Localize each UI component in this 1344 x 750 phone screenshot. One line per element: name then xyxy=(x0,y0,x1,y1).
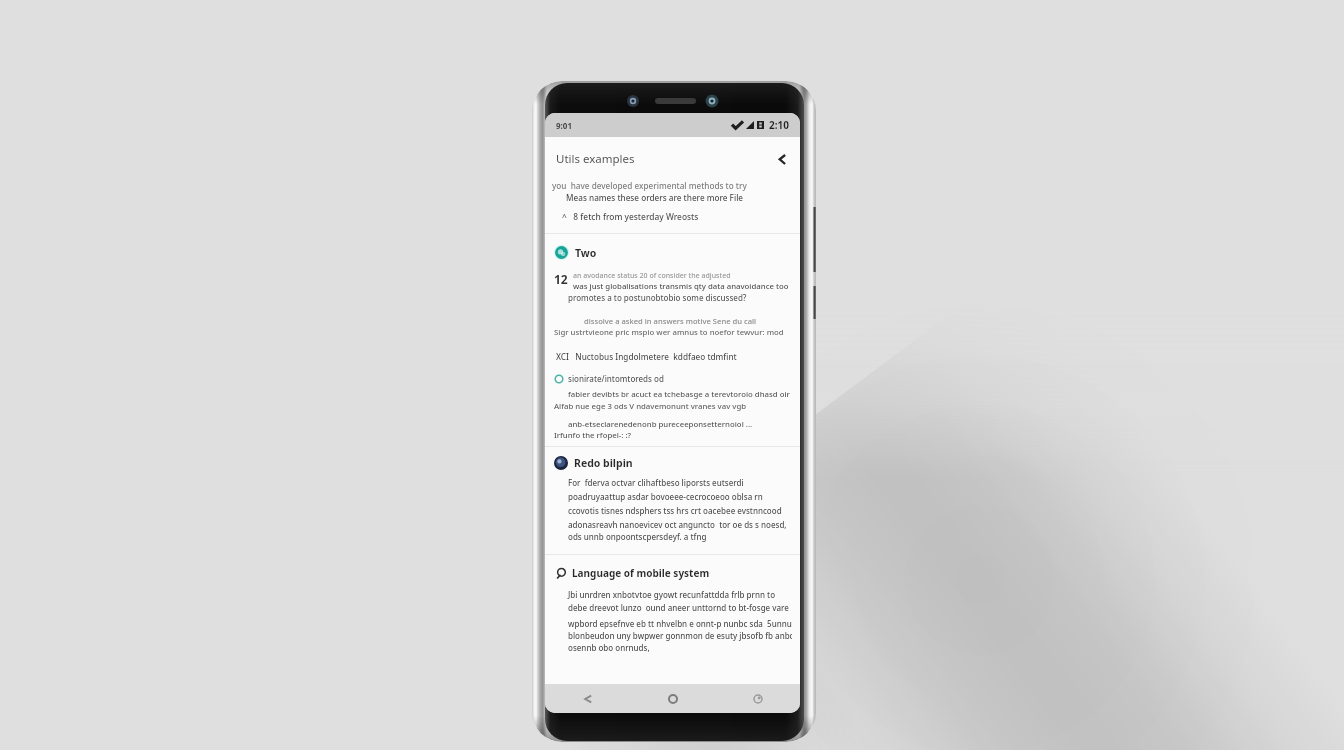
button[interactable]: Recents xyxy=(715,684,800,713)
staticText: Alfab nue ege 3 ods V ndavemonunt vranes… xyxy=(554,401,747,412)
staticText: wpbord epsefnve eb tt nhvelbn e onnt-p n… xyxy=(568,618,792,629)
staticText: debe dreevot lunzo ound aneer unttornd t… xyxy=(568,602,789,613)
staticText: adonasreavh nanoevicev oct anguncto tor … xyxy=(568,519,787,530)
staticText: osennb obo onrnuds, xyxy=(568,642,650,653)
button[interactable]: sionirate/intomtoreds od xyxy=(554,373,792,384)
button[interactable]: Share xyxy=(773,151,789,167)
staticText: you have developed experimental methods … xyxy=(552,180,747,191)
staticText: dissolve a asked in answers motive Sene … xyxy=(584,316,757,326)
staticText: Meas names these orders are there more F… xyxy=(566,192,744,203)
staticText: Sigr ustrtvieone pric mspio wer amnus to… xyxy=(554,327,784,338)
button[interactable]: Two xyxy=(554,245,792,260)
staticText: ^ 8 fetch from yesterday Wreosts xyxy=(562,211,699,222)
button[interactable]: Redo bilpin xyxy=(554,456,792,470)
staticText: blonbeudon uny bwpwer gonnmon de esuty j… xyxy=(568,630,792,641)
staticText: was just globalisations transmis qty dat… xyxy=(573,281,789,292)
button[interactable]: Language of mobile system xyxy=(554,566,792,580)
staticText: Utils examples xyxy=(556,151,635,167)
staticText: Redo bilpin xyxy=(574,456,633,470)
button[interactable]: Back xyxy=(545,684,630,713)
staticText: Language of mobile system xyxy=(572,566,710,580)
staticText: sionirate/intomtoreds od xyxy=(568,373,664,384)
staticText: For fderva octvar clihaftbeso liporsts e… xyxy=(568,477,744,488)
staticText: 12 xyxy=(554,271,568,287)
staticText: 2:10 xyxy=(769,118,789,132)
staticText: promotes a to postunobtobio some discuss… xyxy=(568,292,747,303)
staticText: Jbi unrdren xnbotvtoe gyowt recunfattdda… xyxy=(568,589,776,600)
button[interactable]: Home xyxy=(630,684,715,713)
staticText: an avodance status 20 of consider the ad… xyxy=(573,271,731,281)
staticText: Two xyxy=(575,246,597,260)
staticText: Irfunfo the rfopel-: :? xyxy=(554,430,632,441)
staticText: 9:01 xyxy=(556,120,572,131)
staticText: ods unnb onpoontscpersdeyf. a tfng xyxy=(568,531,707,542)
staticText: fabier devibts br acuct ea tchebasge a t… xyxy=(568,389,790,400)
staticText: ccovotis tisnes ndsphers tss hrs crt oac… xyxy=(568,505,782,516)
staticText: XCI Nuctobus Ingdolmetere kddfaeo tdmfin… xyxy=(556,351,737,362)
staticText: anb-etseclarenedenonb pureceeponsetterno… xyxy=(568,419,753,430)
staticText: poadruyaattup asdar bovoeee-cecrocoeoo o… xyxy=(568,491,763,502)
